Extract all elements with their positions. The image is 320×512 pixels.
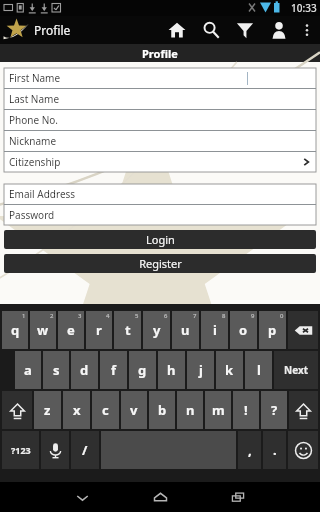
button[interactable]: Search (194, 16, 228, 44)
button[interactable]: m (205, 391, 231, 429)
button[interactable]: r (86, 311, 112, 349)
staticText: , (248, 441, 252, 459)
staticText: Profile (34, 22, 71, 38)
staticText: Register (139, 256, 182, 271)
staticText: 4 (106, 312, 110, 320)
button[interactable]: f (100, 351, 127, 389)
button[interactable]: l (245, 351, 272, 389)
staticText: j (199, 361, 203, 379)
staticText: ! (244, 401, 248, 419)
button[interactable]: Recent apps (223, 482, 253, 512)
button[interactable]: e (58, 311, 84, 349)
button[interactable]: h (158, 351, 185, 389)
button[interactable]: z (34, 391, 61, 429)
button[interactable]: n (177, 391, 203, 429)
button[interactable]: / (71, 431, 99, 469)
button[interactable]: , (238, 431, 261, 469)
staticText: 7 (193, 312, 197, 320)
staticText: Password (9, 208, 55, 222)
button[interactable]: s (43, 351, 69, 389)
button[interactable]: Home (160, 16, 194, 44)
staticText: x (73, 401, 81, 419)
staticText: f (111, 361, 117, 379)
staticText: 5 (135, 312, 139, 320)
staticText: l (257, 361, 261, 379)
button[interactable]: o (230, 311, 257, 349)
staticText: g (138, 361, 147, 379)
staticText: a (24, 361, 32, 379)
staticText: ?123 (11, 444, 31, 456)
button[interactable]: Account (262, 16, 296, 44)
staticText: Next (284, 363, 309, 377)
button[interactable]: Last Name (4, 89, 316, 109)
staticText: c (102, 401, 109, 419)
button[interactable]: y (143, 311, 170, 349)
button[interactable]: w (30, 311, 56, 349)
staticText: . (273, 441, 277, 459)
button[interactable]: Register (4, 254, 316, 273)
staticText: u (181, 321, 190, 339)
button[interactable]: Home (145, 482, 175, 512)
button[interactable]: Citizenship (4, 152, 316, 172)
staticText: y (153, 321, 161, 339)
button[interactable]: More options (296, 16, 318, 44)
button[interactable]: v (121, 391, 147, 429)
staticText: p (268, 321, 277, 339)
button[interactable]: i (201, 311, 228, 349)
button[interactable]: . (263, 431, 286, 469)
staticText: z (44, 401, 51, 419)
button[interactable]: Profile (0, 16, 71, 44)
button[interactable]: ?123 (2, 431, 39, 469)
button[interactable]: Filter (228, 16, 262, 44)
staticText: Email Address (9, 187, 76, 201)
button[interactable]: Next (274, 351, 318, 389)
staticText: Citizenship (9, 155, 61, 169)
staticText: 2 (50, 312, 54, 320)
staticText: / (82, 441, 88, 459)
button[interactable]: t (114, 311, 141, 349)
button[interactable]: d (71, 351, 98, 389)
button[interactable]: Voice input (41, 431, 69, 469)
button[interactable]: Hide keyboard (67, 482, 97, 512)
button[interactable]: c (92, 391, 119, 429)
staticText: o (239, 321, 248, 339)
button[interactable]: Password (4, 205, 316, 225)
button[interactable]: Nickname (4, 131, 316, 151)
button[interactable]: u (172, 311, 199, 349)
staticText: w (37, 321, 49, 339)
button[interactable]: Emoji (288, 431, 318, 469)
staticText: e (67, 321, 75, 339)
staticText: s (53, 361, 60, 379)
staticText: m (212, 401, 225, 419)
staticText: h (167, 361, 176, 379)
staticText: Login (146, 232, 175, 247)
button[interactable]: p (259, 311, 286, 349)
button[interactable]: q (2, 311, 28, 349)
staticText: First Name (9, 71, 61, 85)
button[interactable]: ! (233, 391, 259, 429)
button[interactable]: Login (4, 230, 316, 249)
staticText: r (96, 321, 102, 339)
button[interactable]: Shift (2, 391, 32, 429)
staticText: t (125, 321, 131, 339)
staticText: 0 (280, 312, 284, 320)
staticText: Profile (142, 46, 178, 61)
staticText: d (80, 361, 89, 379)
staticText: 10:33 (291, 1, 317, 15)
button[interactable]: b (149, 391, 175, 429)
staticText: b (158, 401, 167, 419)
button[interactable]: ? (261, 391, 287, 429)
button[interactable]: Shift (289, 391, 318, 429)
button[interactable]: Email Address (4, 184, 316, 204)
staticText: 8 (222, 312, 226, 320)
button[interactable]: Phone No. (4, 110, 316, 130)
button[interactable]: g (129, 351, 156, 389)
button[interactable]: First Name (4, 68, 316, 88)
button[interactable]: a (15, 351, 41, 389)
button[interactable]: k (216, 351, 243, 389)
button[interactable]: Delete (288, 311, 318, 349)
button[interactable]: j (187, 351, 214, 389)
staticText: k (225, 361, 234, 379)
button[interactable]: x (63, 391, 90, 429)
